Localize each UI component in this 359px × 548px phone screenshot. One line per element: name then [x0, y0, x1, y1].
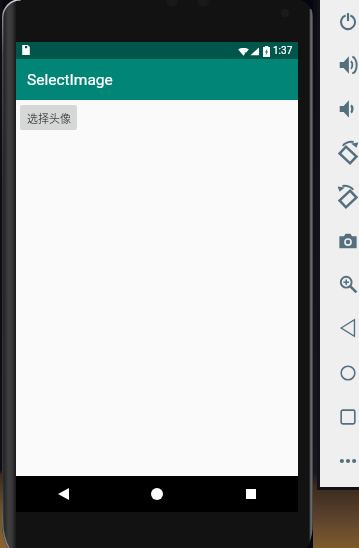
button[interactable]: Take screenshot [337, 230, 359, 252]
button[interactable]: Overview [337, 406, 359, 428]
button[interactable]: Home [337, 362, 359, 384]
button[interactable]: Volume down [337, 98, 359, 120]
button[interactable]: 选择头像 [20, 105, 77, 130]
button[interactable]: Volume up [337, 54, 359, 76]
button[interactable]: Home [110, 476, 204, 512]
button[interactable]: Recents [204, 476, 298, 512]
button[interactable]: Rotate right [337, 186, 359, 208]
button[interactable]: Power [337, 10, 359, 32]
staticText: 选择头像 [27, 110, 71, 126]
button[interactable]: More [337, 450, 359, 472]
button[interactable]: Back [16, 476, 110, 512]
button[interactable]: Back [337, 317, 359, 339]
button[interactable]: Rotate left [337, 142, 359, 164]
button[interactable]: Zoom [337, 273, 359, 295]
staticText: 1:37 [273, 45, 293, 57]
staticText: SelectImage [27, 71, 113, 89]
